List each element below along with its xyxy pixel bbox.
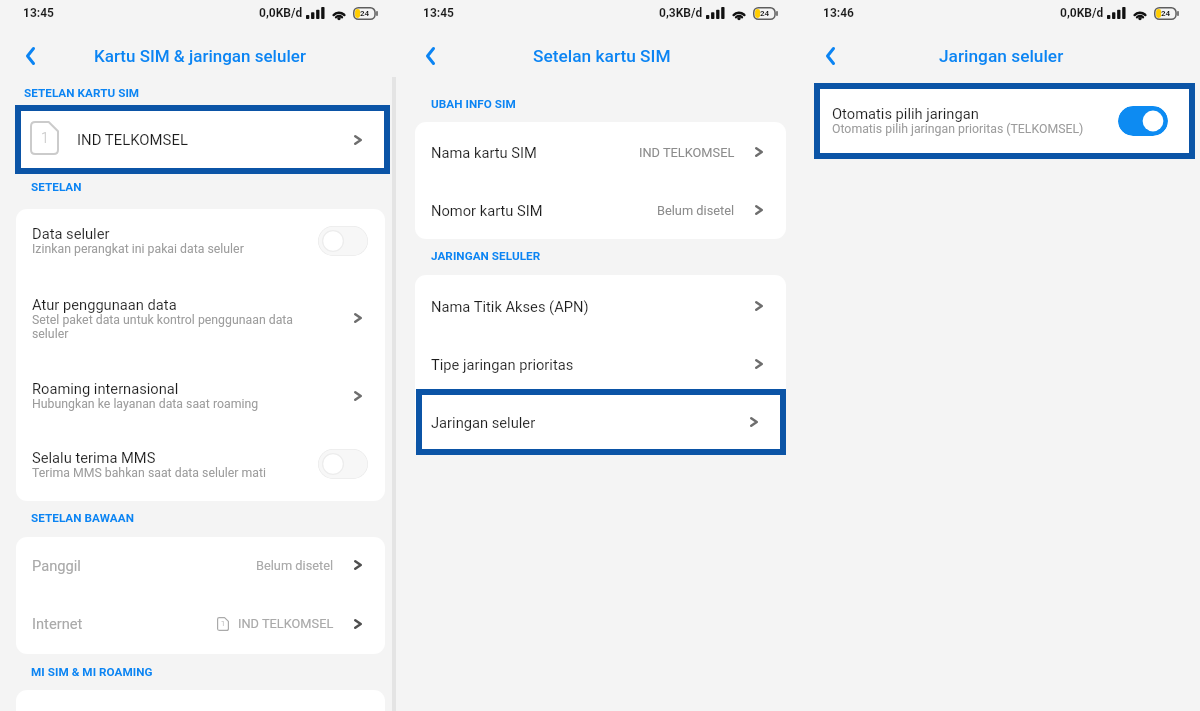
staticText: Terima MMS bahkan saat data seluler mati	[32, 466, 266, 480]
staticText: 24	[360, 9, 370, 18]
staticText: Nama kartu SIM	[431, 144, 639, 161]
staticText: Belum disetel	[256, 558, 334, 573]
staticText: Belum disetel	[657, 203, 735, 218]
staticText: Hubungkan ke layanan data saat roaming	[32, 397, 259, 411]
button[interactable]: Otomatis pilih jaringan	[820, 89, 1189, 153]
staticText: Setel paket data untuk kontrol penggunaa…	[32, 313, 294, 341]
staticText: IND TELKOMSEL	[77, 131, 354, 148]
staticText: SETELAN KARTU SIM	[24, 86, 140, 100]
staticText: MI SIM & MI ROAMING	[31, 665, 153, 679]
staticText: Setelan kartu SIM	[533, 46, 671, 66]
button[interactable]: Data seluler	[16, 209, 385, 272]
button[interactable]: Panggil	[16, 537, 385, 593]
button[interactable]: Roaming internasional	[16, 364, 385, 427]
button[interactable]: Atur penggunaan data	[16, 272, 385, 364]
button[interactable]: Back	[817, 43, 843, 69]
staticText: 0,3KB/d	[659, 6, 703, 20]
button[interactable]: Back	[417, 43, 443, 69]
staticText: Otomatis pilih jaringan prioritas (TELKO…	[832, 122, 1084, 136]
staticText: Otomatis pilih jaringan	[832, 105, 979, 122]
staticText: Roaming internasional	[32, 380, 179, 397]
staticText: Selalu terima MMS	[32, 449, 156, 466]
staticText: 0,0KB/d	[259, 6, 303, 20]
staticText: SETELAN	[31, 180, 82, 194]
staticText: 24	[760, 9, 770, 18]
staticText: Izinkan perangkat ini pakai data seluler	[32, 242, 244, 256]
staticText: 13:46	[823, 6, 854, 20]
staticText: 13:45	[423, 6, 454, 20]
button[interactable]: Back	[17, 43, 43, 69]
button[interactable]: Selalu terima MMS	[16, 427, 385, 501]
staticText: JARINGAN SELULER	[431, 249, 541, 263]
staticText: 24	[1161, 9, 1171, 18]
staticText: 13:45	[23, 6, 54, 20]
button[interactable]: Tipe jaringan prioritas	[415, 337, 786, 391]
staticText: SETELAN BAWAAN	[31, 511, 134, 525]
button[interactable]: Nama Titik Akses (APN)	[415, 275, 786, 337]
staticText: IND TELKOMSEL	[238, 616, 334, 631]
button[interactable]: Nama kartu SIM	[415, 122, 786, 182]
staticText: Tipe jaringan prioritas	[431, 356, 755, 373]
staticText: Internet	[32, 615, 217, 632]
staticText: Panggil	[32, 557, 256, 574]
button[interactable]: Switch on	[1118, 106, 1168, 136]
staticText: Nama Titik Akses (APN)	[431, 298, 755, 315]
staticText: 1	[41, 130, 49, 146]
staticText: Nomor kartu SIM	[431, 202, 657, 219]
staticText: UBAH INFO SIM	[431, 97, 516, 111]
staticText: Kartu SIM & jaringan seluler	[94, 46, 306, 66]
staticText: Atur penggunaan data	[32, 296, 177, 313]
staticText: 0,0KB/d	[1060, 6, 1104, 20]
button[interactable]: Switch off	[318, 226, 368, 256]
staticText: 1	[221, 620, 225, 628]
staticText: Jaringan seluler	[431, 414, 750, 431]
button[interactable]: Jaringan seluler	[422, 395, 780, 449]
button[interactable]: 1	[21, 111, 384, 168]
staticText: Jaringan seluler	[939, 46, 1064, 66]
button[interactable]: Internet	[16, 593, 385, 654]
staticText: IND TELKOMSEL	[639, 145, 735, 160]
button[interactable]: Switch off	[318, 449, 368, 479]
button[interactable]: Nomor kartu SIM	[415, 182, 786, 238]
staticText: Data seluler	[32, 225, 110, 242]
